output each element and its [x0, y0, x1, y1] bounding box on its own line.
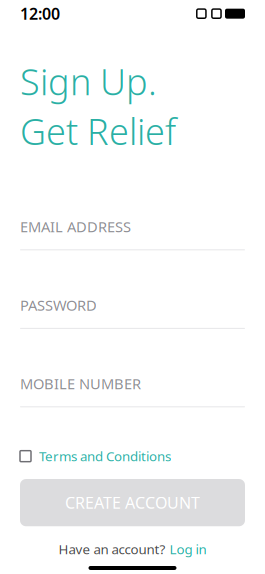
staticText: MOBILE NUMBER [20, 374, 141, 393]
staticText: Sign Up. [20, 57, 157, 105]
staticText: CREATE ACCOUNT [65, 492, 200, 513]
staticText: Log in [169, 540, 206, 558]
button[interactable]: CREATE ACCOUNT [20, 479, 245, 526]
button[interactable]: Terms and Conditions [0, 441, 265, 471]
staticText: Terms and Conditions [39, 447, 171, 465]
staticText: PASSWORD [20, 295, 97, 315]
staticText: Get Relief [20, 107, 176, 155]
staticText: 12:00 [20, 3, 60, 24]
staticText: EMAIL ADDRESS [20, 217, 131, 236]
button[interactable]: Have an account? [0, 540, 265, 558]
staticText: Have an account? [58, 540, 165, 558]
